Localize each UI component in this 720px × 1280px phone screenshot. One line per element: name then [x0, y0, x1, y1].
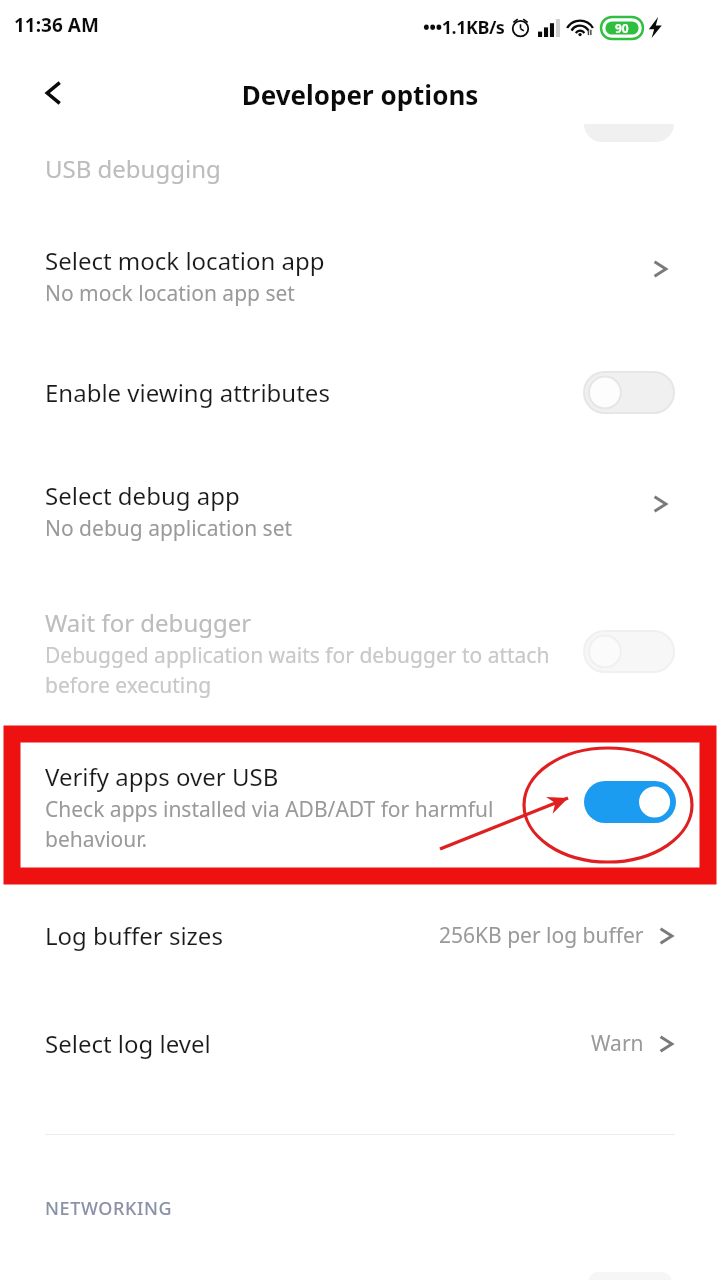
staticText: No debug application set [45, 514, 293, 543]
staticText: 90 [615, 20, 629, 36]
staticText: Check apps installed via ADB/ADT for har… [45, 795, 494, 853]
staticText: Select mock location app [45, 244, 325, 277]
button[interactable]: USB debugging [0, 138, 720, 200]
button[interactable]: Select debug app [0, 467, 720, 557]
staticText: Select log level [45, 1027, 211, 1060]
staticText: Verify apps over USB [45, 760, 279, 793]
staticText: Debugged application waits for debugger … [45, 641, 550, 699]
staticText: Log buffer sizes [45, 919, 223, 952]
button[interactable]: Select log level [0, 1013, 720, 1075]
staticText: USB debugging [45, 152, 221, 185]
staticText: Wait for debugger [45, 606, 252, 639]
button[interactable]: Enable viewing attributes [0, 362, 720, 424]
staticText: Select debug app [45, 479, 240, 512]
staticText: •••1.1KB/s [423, 15, 505, 40]
staticText: No mock location app set [45, 279, 295, 308]
button[interactable]: Back [26, 65, 82, 121]
button[interactable]: Log buffer sizes [0, 905, 720, 967]
staticText: 11:36 AM [14, 12, 99, 38]
staticText: Developer options [0, 77, 720, 112]
staticText: 256KB per log buffer [439, 921, 644, 950]
staticText: NETWORKING [45, 1196, 173, 1221]
staticText: Enable viewing attributes [45, 376, 330, 409]
button[interactable]: Wait for debugger [0, 596, 720, 706]
button[interactable]: Verify apps over USB [0, 748, 720, 866]
staticText: Warn [591, 1029, 644, 1058]
button[interactable]: Select mock location app [0, 232, 720, 322]
